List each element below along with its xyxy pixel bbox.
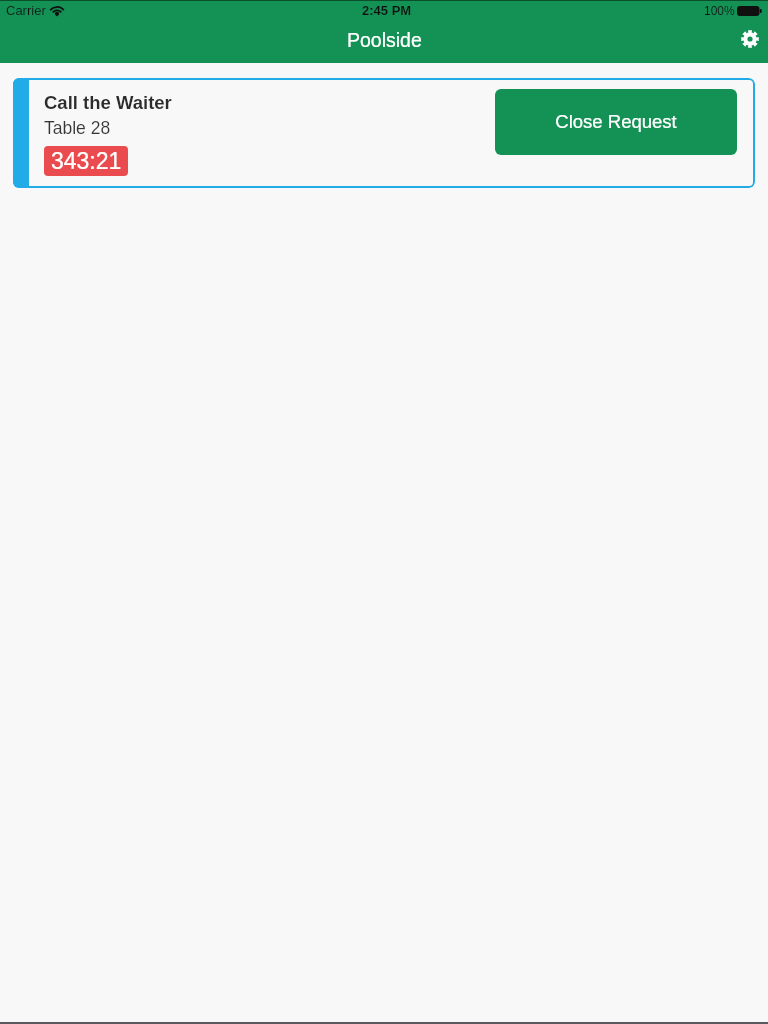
staticText: 100% <box>704 4 735 17</box>
button[interactable]: Close Request <box>495 89 737 155</box>
staticText: Carrier <box>6 3 46 18</box>
staticText: Close Request <box>555 111 677 132</box>
staticText: 343:21 <box>51 148 122 174</box>
button[interactable]: Call the Waiter <box>13 78 755 188</box>
staticText: 2:45 PM <box>362 3 412 18</box>
staticText: Table 28 <box>44 118 111 138</box>
staticText: Call the Waiter <box>44 92 172 113</box>
staticText: Poolside <box>347 29 422 51</box>
button[interactable]: Settings <box>732 20 768 63</box>
